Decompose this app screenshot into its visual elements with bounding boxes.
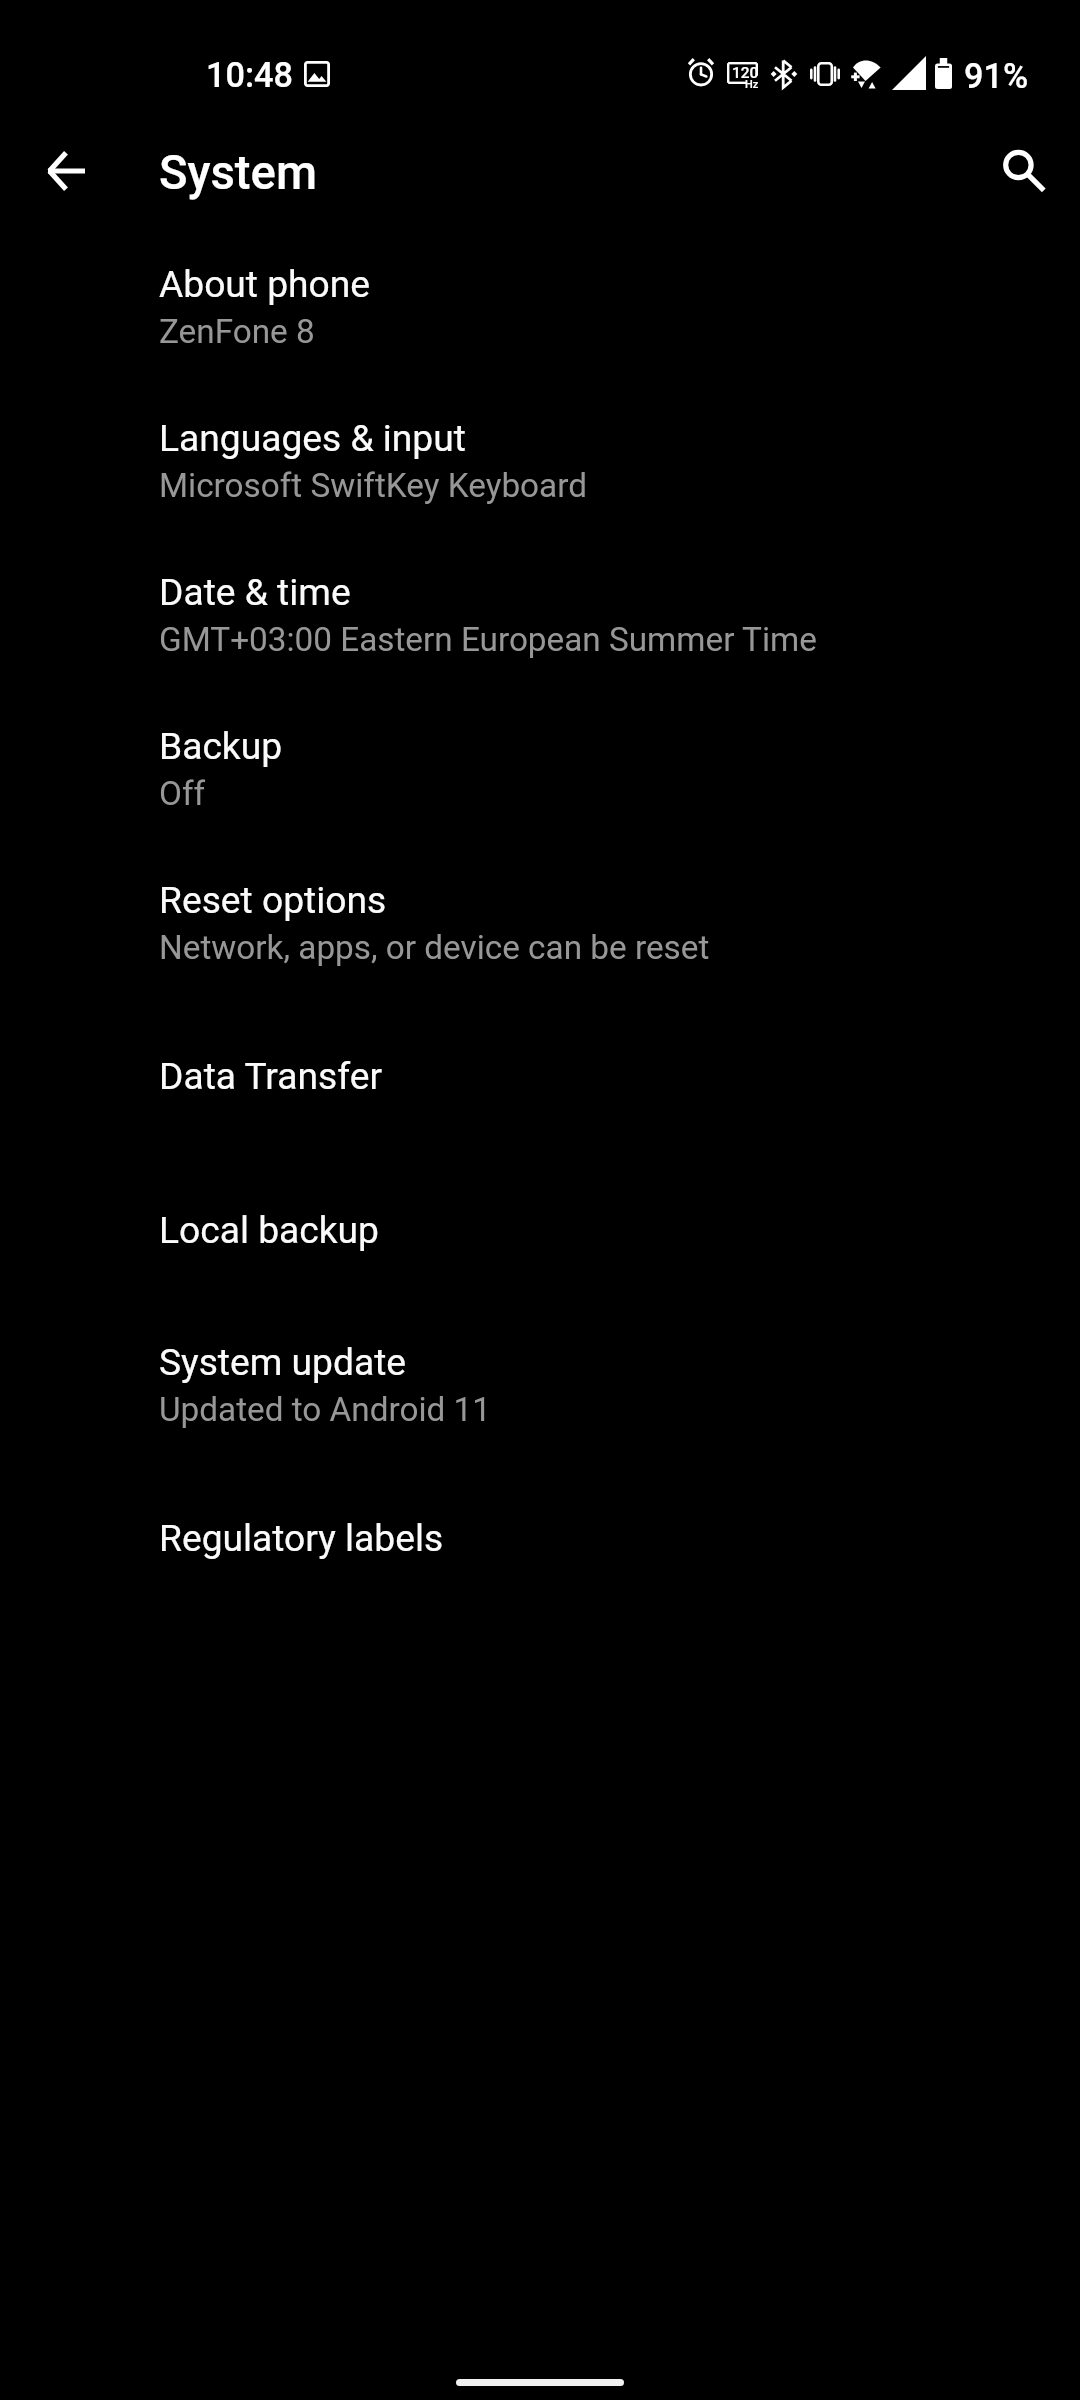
staticText: ZenFone 8: [159, 312, 315, 351]
staticText: Reset options: [159, 878, 387, 922]
staticText: Regulatory labels: [159, 1516, 444, 1560]
staticText: Hz: [745, 78, 759, 91]
button[interactable]: System update: [0, 1311, 1080, 1465]
button[interactable]: Regulatory labels: [0, 1465, 1080, 1619]
button[interactable]: Date & time: [0, 541, 1080, 695]
staticText: 91%: [964, 56, 1029, 96]
button[interactable]: Data Transfer: [0, 1003, 1080, 1157]
staticText: 120: [732, 64, 759, 82]
staticText: Backup: [159, 724, 283, 768]
button[interactable]: Search: [975, 123, 1071, 219]
button[interactable]: Languages & input: [0, 387, 1080, 541]
staticText: Updated to Android 11: [159, 1390, 491, 1429]
staticText: Local backup: [159, 1208, 380, 1252]
button[interactable]: Back: [18, 123, 114, 219]
staticText: Network, apps, or device can be reset: [159, 928, 710, 967]
staticText: Off: [159, 774, 206, 813]
button[interactable]: About phone: [0, 233, 1080, 387]
staticText: GMT+03:00 Eastern European Summer Time: [159, 620, 817, 659]
button[interactable]: Local backup: [0, 1157, 1080, 1311]
staticText: System: [159, 145, 317, 200]
button[interactable]: Reset options: [0, 849, 1080, 1003]
staticText: 10:48: [206, 55, 294, 95]
staticText: Microsoft SwiftKey Keyboard: [159, 466, 587, 505]
staticText: About phone: [159, 262, 371, 306]
button[interactable]: Backup: [0, 695, 1080, 849]
staticText: System update: [159, 1340, 407, 1384]
staticText: Data Transfer: [159, 1054, 382, 1098]
staticText: Languages & input: [159, 416, 466, 460]
staticText: Date & time: [159, 570, 351, 614]
